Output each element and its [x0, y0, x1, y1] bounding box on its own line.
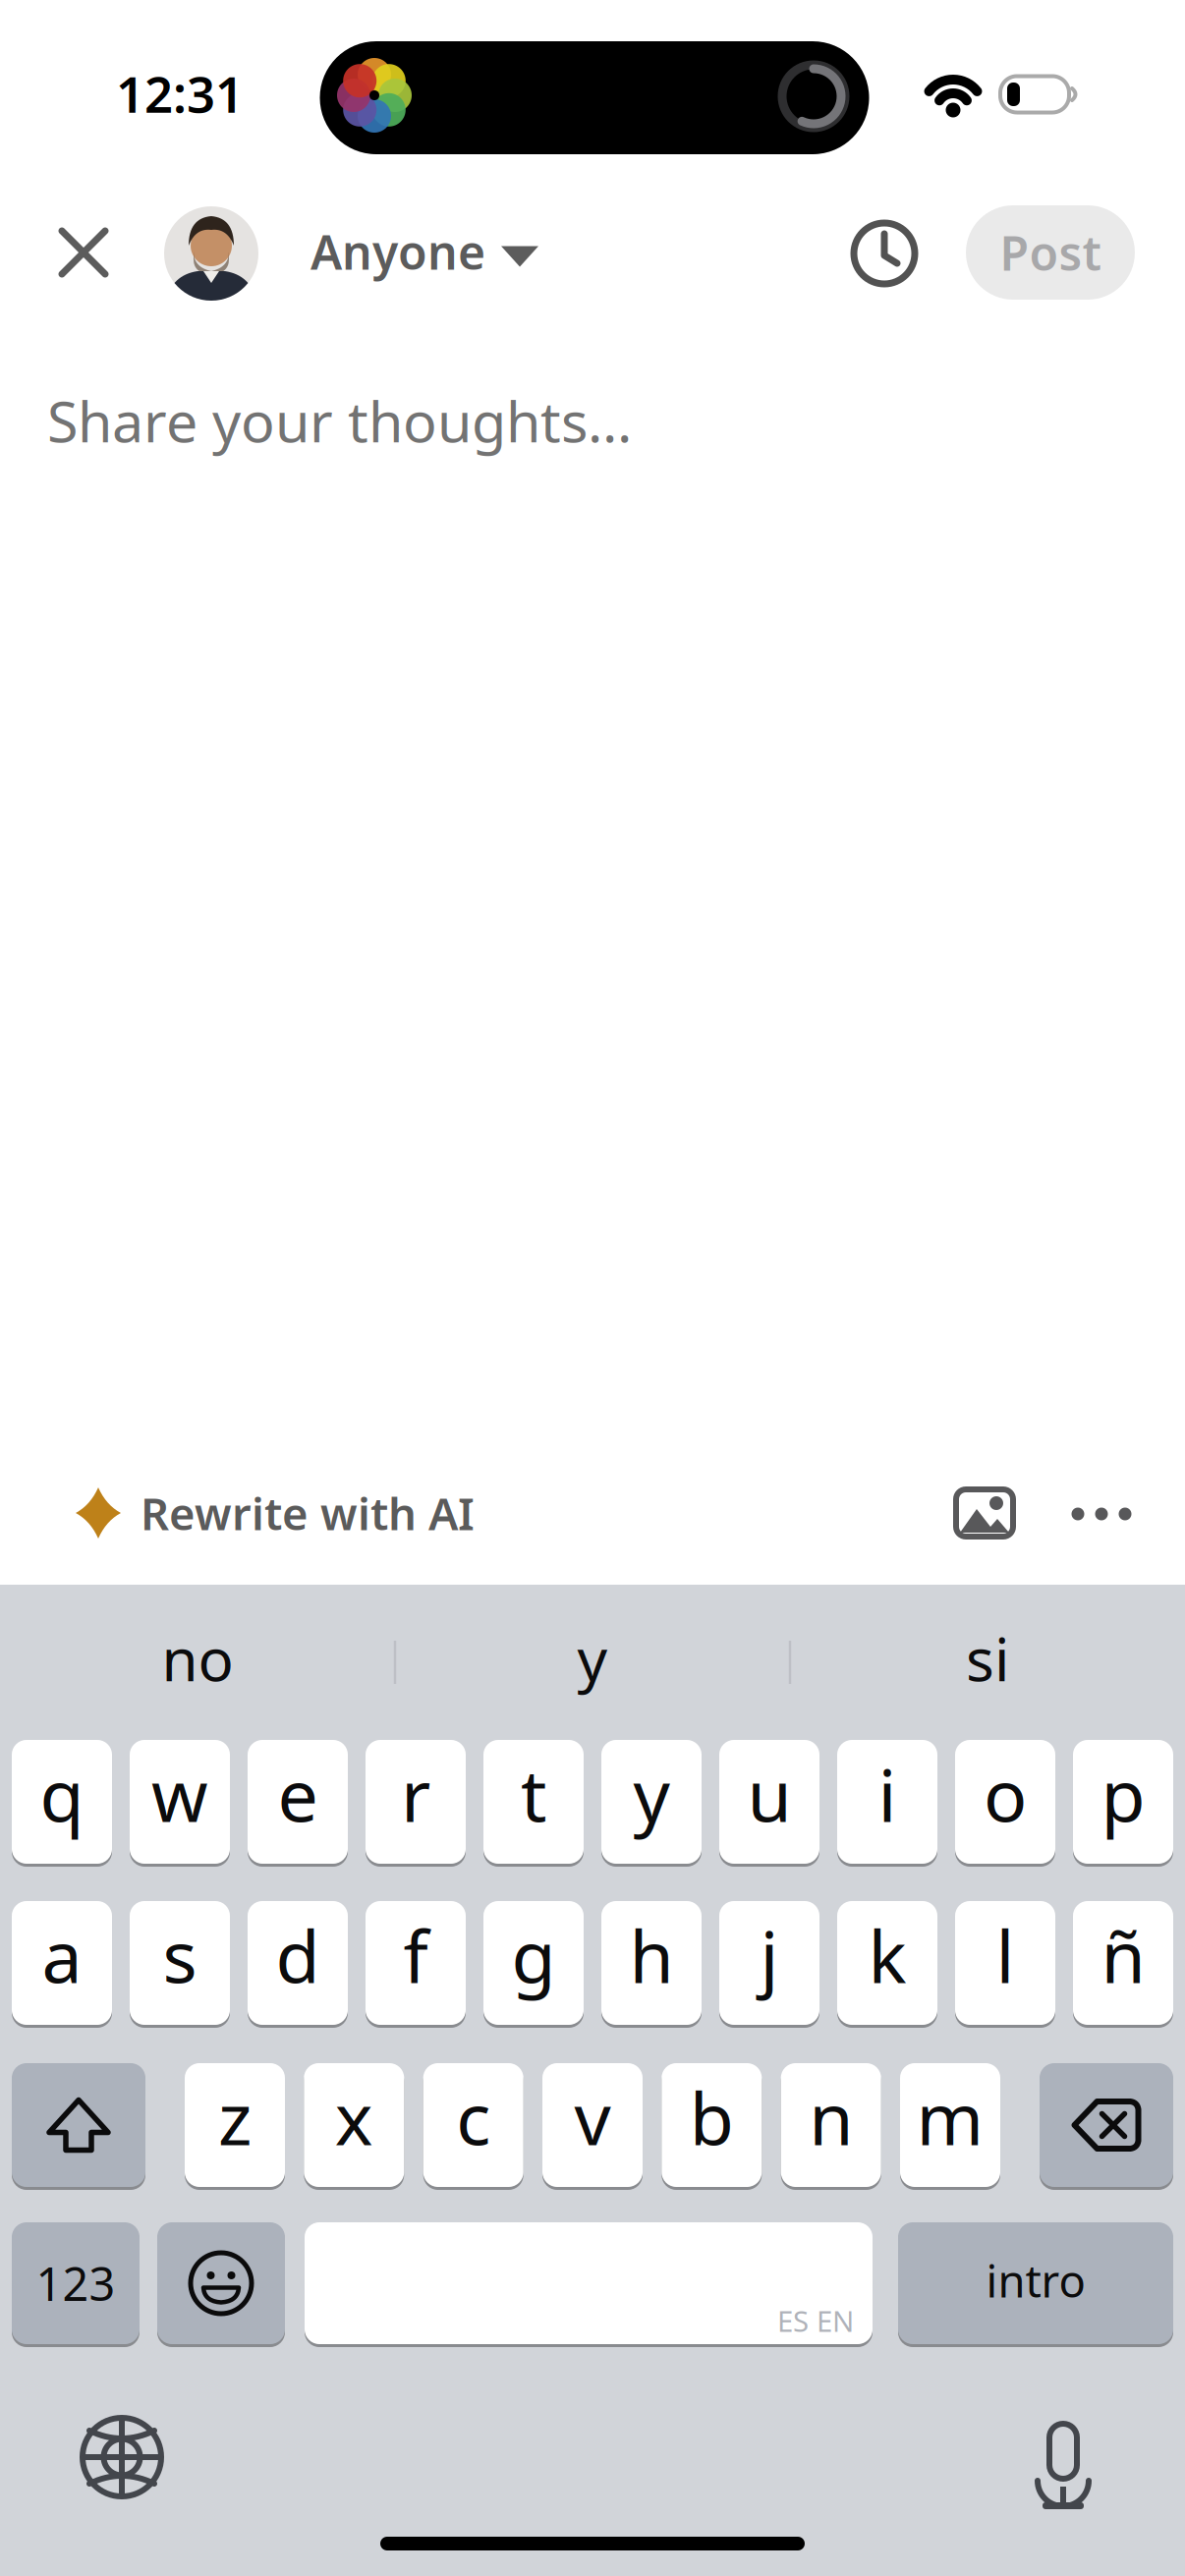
staticText: c — [456, 2069, 491, 2165]
button[interactable]: w — [130, 1740, 230, 1864]
button[interactable]: Add photo — [954, 1487, 1015, 1539]
button[interactable]: t — [483, 1740, 584, 1864]
button[interactable]: p — [1073, 1740, 1173, 1864]
staticText: intro — [986, 2251, 1085, 2310]
staticText: si — [966, 1619, 1009, 1698]
staticText: p — [1101, 1746, 1145, 1842]
button[interactable]: b — [662, 2063, 762, 2187]
staticText: b — [690, 2069, 734, 2165]
staticText: Anyone — [310, 220, 485, 283]
button[interactable]: Return — [898, 2222, 1173, 2344]
button[interactable]: Shift — [12, 2063, 145, 2187]
staticText: q — [40, 1746, 84, 1842]
button[interactable]: Numbers — [12, 2222, 140, 2344]
staticText: k — [868, 1907, 906, 2003]
button[interactable]: q — [12, 1740, 112, 1864]
button[interactable]: u — [719, 1740, 819, 1864]
staticText: y — [577, 1619, 608, 1698]
button[interactable]: y — [406, 1599, 779, 1717]
button[interactable]: ñ — [1073, 1901, 1173, 2025]
button[interactable]: Post — [966, 205, 1135, 300]
staticText: Rewrite with AI — [141, 1483, 475, 1543]
button[interactable]: v — [542, 2063, 643, 2187]
button[interactable]: Rewrite with AI — [76, 1469, 587, 1557]
staticText: Share your thoughts... — [47, 383, 632, 458]
button[interactable]: d — [248, 1901, 348, 2025]
button[interactable]: Anyone — [310, 204, 664, 299]
staticText: Post — [1000, 221, 1101, 284]
button[interactable]: no — [11, 1599, 384, 1717]
staticText: ñ — [1101, 1907, 1145, 2003]
staticText: e — [278, 1746, 318, 1842]
button[interactable]: c — [423, 2063, 523, 2187]
button[interactable]: a — [12, 1901, 112, 2025]
button[interactable]: g — [483, 1901, 584, 2025]
staticText: w — [151, 1746, 208, 1842]
button[interactable]: Dictation — [1034, 2408, 1093, 2498]
button[interactable]: m — [900, 2063, 1000, 2187]
staticText: r — [401, 1746, 430, 1842]
button[interactable]: k — [837, 1901, 937, 2025]
button[interactable]: s — [130, 1901, 230, 2025]
button[interactable]: n — [781, 2063, 881, 2187]
staticText: t — [521, 1746, 546, 1842]
button[interactable]: Schedule post — [847, 216, 922, 291]
button[interactable]: Profile — [164, 206, 258, 301]
staticText: m — [916, 2069, 984, 2165]
button[interactable]: o — [955, 1740, 1055, 1864]
button[interactable]: y — [601, 1740, 702, 1864]
staticText: l — [996, 1907, 1015, 2003]
staticText: s — [163, 1907, 197, 2003]
staticText: x — [335, 2069, 373, 2165]
staticText: j — [760, 1907, 779, 2003]
button[interactable]: i — [837, 1740, 937, 1864]
button[interactable]: Space — [305, 2222, 873, 2344]
staticText: d — [276, 1907, 320, 2003]
staticText: 123 — [36, 2253, 115, 2314]
button[interactable]: Next keyboard — [79, 2414, 165, 2500]
staticText: ES EN — [777, 2301, 854, 2340]
button[interactable]: h — [601, 1901, 702, 2025]
button[interactable]: z — [185, 2063, 285, 2187]
button[interactable]: j — [719, 1901, 819, 2025]
button[interactable]: Delete — [1040, 2063, 1173, 2187]
staticText: f — [403, 1907, 428, 2003]
staticText: a — [42, 1907, 82, 2003]
button[interactable]: si — [801, 1599, 1174, 1717]
staticText: 12:31 — [116, 60, 244, 126]
button[interactable]: More options — [1072, 1508, 1131, 1520]
staticText: no — [162, 1619, 233, 1698]
staticText: o — [984, 1746, 1027, 1842]
button[interactable]: Emoji — [157, 2222, 285, 2344]
staticText: z — [218, 2069, 252, 2165]
button[interactable]: f — [366, 1901, 466, 2025]
staticText: i — [878, 1746, 897, 1842]
button[interactable]: r — [366, 1740, 466, 1864]
staticText: v — [574, 2069, 611, 2165]
staticText: g — [511, 1907, 556, 2003]
button[interactable]: x — [304, 2063, 404, 2187]
button[interactable]: Dismiss — [36, 205, 131, 300]
button[interactable]: l — [955, 1901, 1055, 2025]
staticText: y — [633, 1746, 670, 1842]
staticText: h — [629, 1907, 674, 2003]
staticText: u — [747, 1746, 791, 1842]
staticText: n — [809, 2069, 853, 2165]
button[interactable]: e — [248, 1740, 348, 1864]
